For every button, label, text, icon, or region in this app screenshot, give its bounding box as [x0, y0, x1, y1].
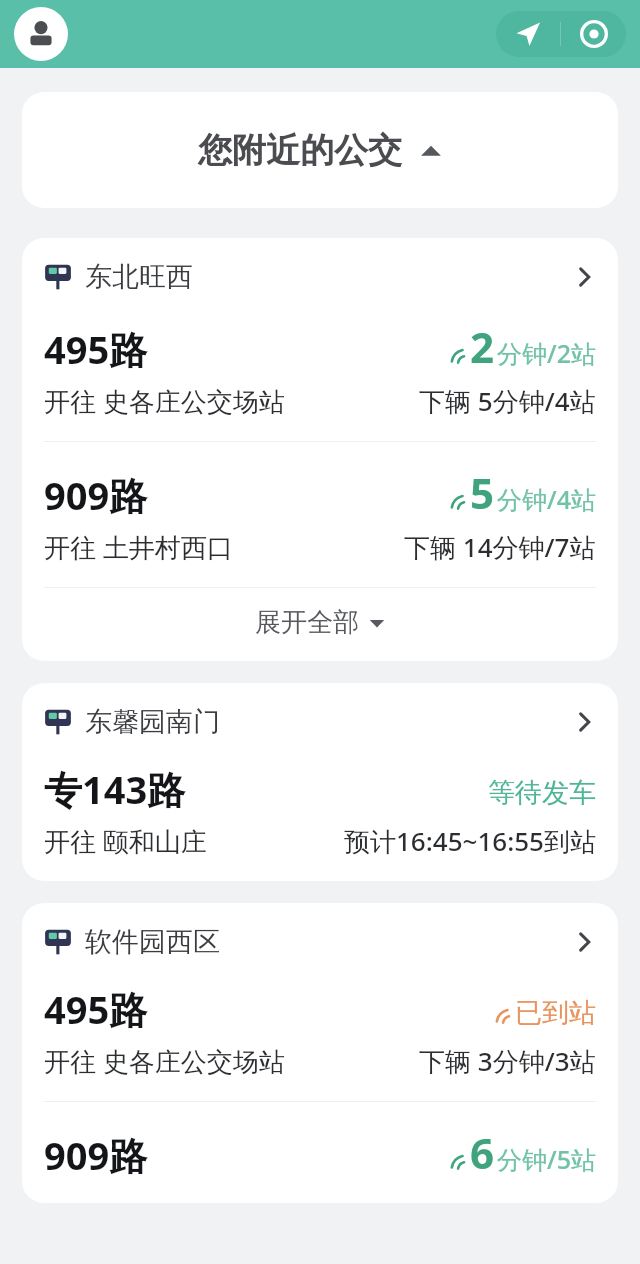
button[interactable]: 软件园西区 — [22, 903, 618, 1203]
staticText: 2 — [470, 318, 495, 375]
staticText: 909路 — [44, 1129, 148, 1181]
button[interactable]: 您附近的公交 — [22, 92, 618, 208]
button[interactable]: 东馨园南门 — [22, 683, 618, 881]
staticText: 展开全部 — [255, 606, 359, 639]
button[interactable]: 东北旺西 — [22, 238, 618, 661]
button[interactable]: 软件园西区 — [44, 925, 596, 959]
staticText: 分钟/2站 — [497, 336, 596, 370]
button[interactable]: My location — [561, 11, 626, 57]
staticText: 东北旺西 — [85, 260, 193, 294]
staticText: 您附近的公交 — [198, 129, 402, 172]
staticText: 开往 颐和山庄 — [44, 823, 207, 859]
staticText: 下辆 3分钟/3站 — [419, 1043, 596, 1079]
staticText: 软件园西区 — [85, 925, 220, 959]
staticText: 预计16:45~16:55到站 — [344, 823, 596, 859]
staticText: 专143路 — [44, 763, 186, 815]
button[interactable]: 东北旺西 — [44, 260, 596, 294]
staticText: 下辆 5分钟/4站 — [419, 383, 596, 419]
staticText: 等待发车 — [488, 776, 596, 810]
button[interactable]: Profile — [14, 7, 68, 61]
staticText: 6 — [470, 1124, 495, 1181]
staticText: 开往 土井村西口 — [44, 529, 233, 565]
staticText: 已到站 — [515, 996, 596, 1030]
staticText: 495路 — [44, 983, 148, 1035]
staticText: 东馨园南门 — [85, 705, 220, 739]
staticText: 5 — [470, 464, 495, 521]
staticText: 开往 史各庄公交场站 — [44, 383, 285, 419]
staticText: 909路 — [44, 469, 148, 521]
staticText: 下辆 14分钟/7站 — [404, 529, 596, 565]
button[interactable]: Navigate — [496, 11, 560, 57]
button[interactable]: 东馨园南门 — [44, 705, 596, 739]
staticText: 分钟/5站 — [497, 1142, 596, 1176]
staticText: 分钟/4站 — [497, 482, 596, 516]
button[interactable]: 展开全部 — [44, 606, 596, 639]
staticText: 495路 — [44, 323, 148, 375]
staticText: 开往 史各庄公交场站 — [44, 1043, 285, 1079]
